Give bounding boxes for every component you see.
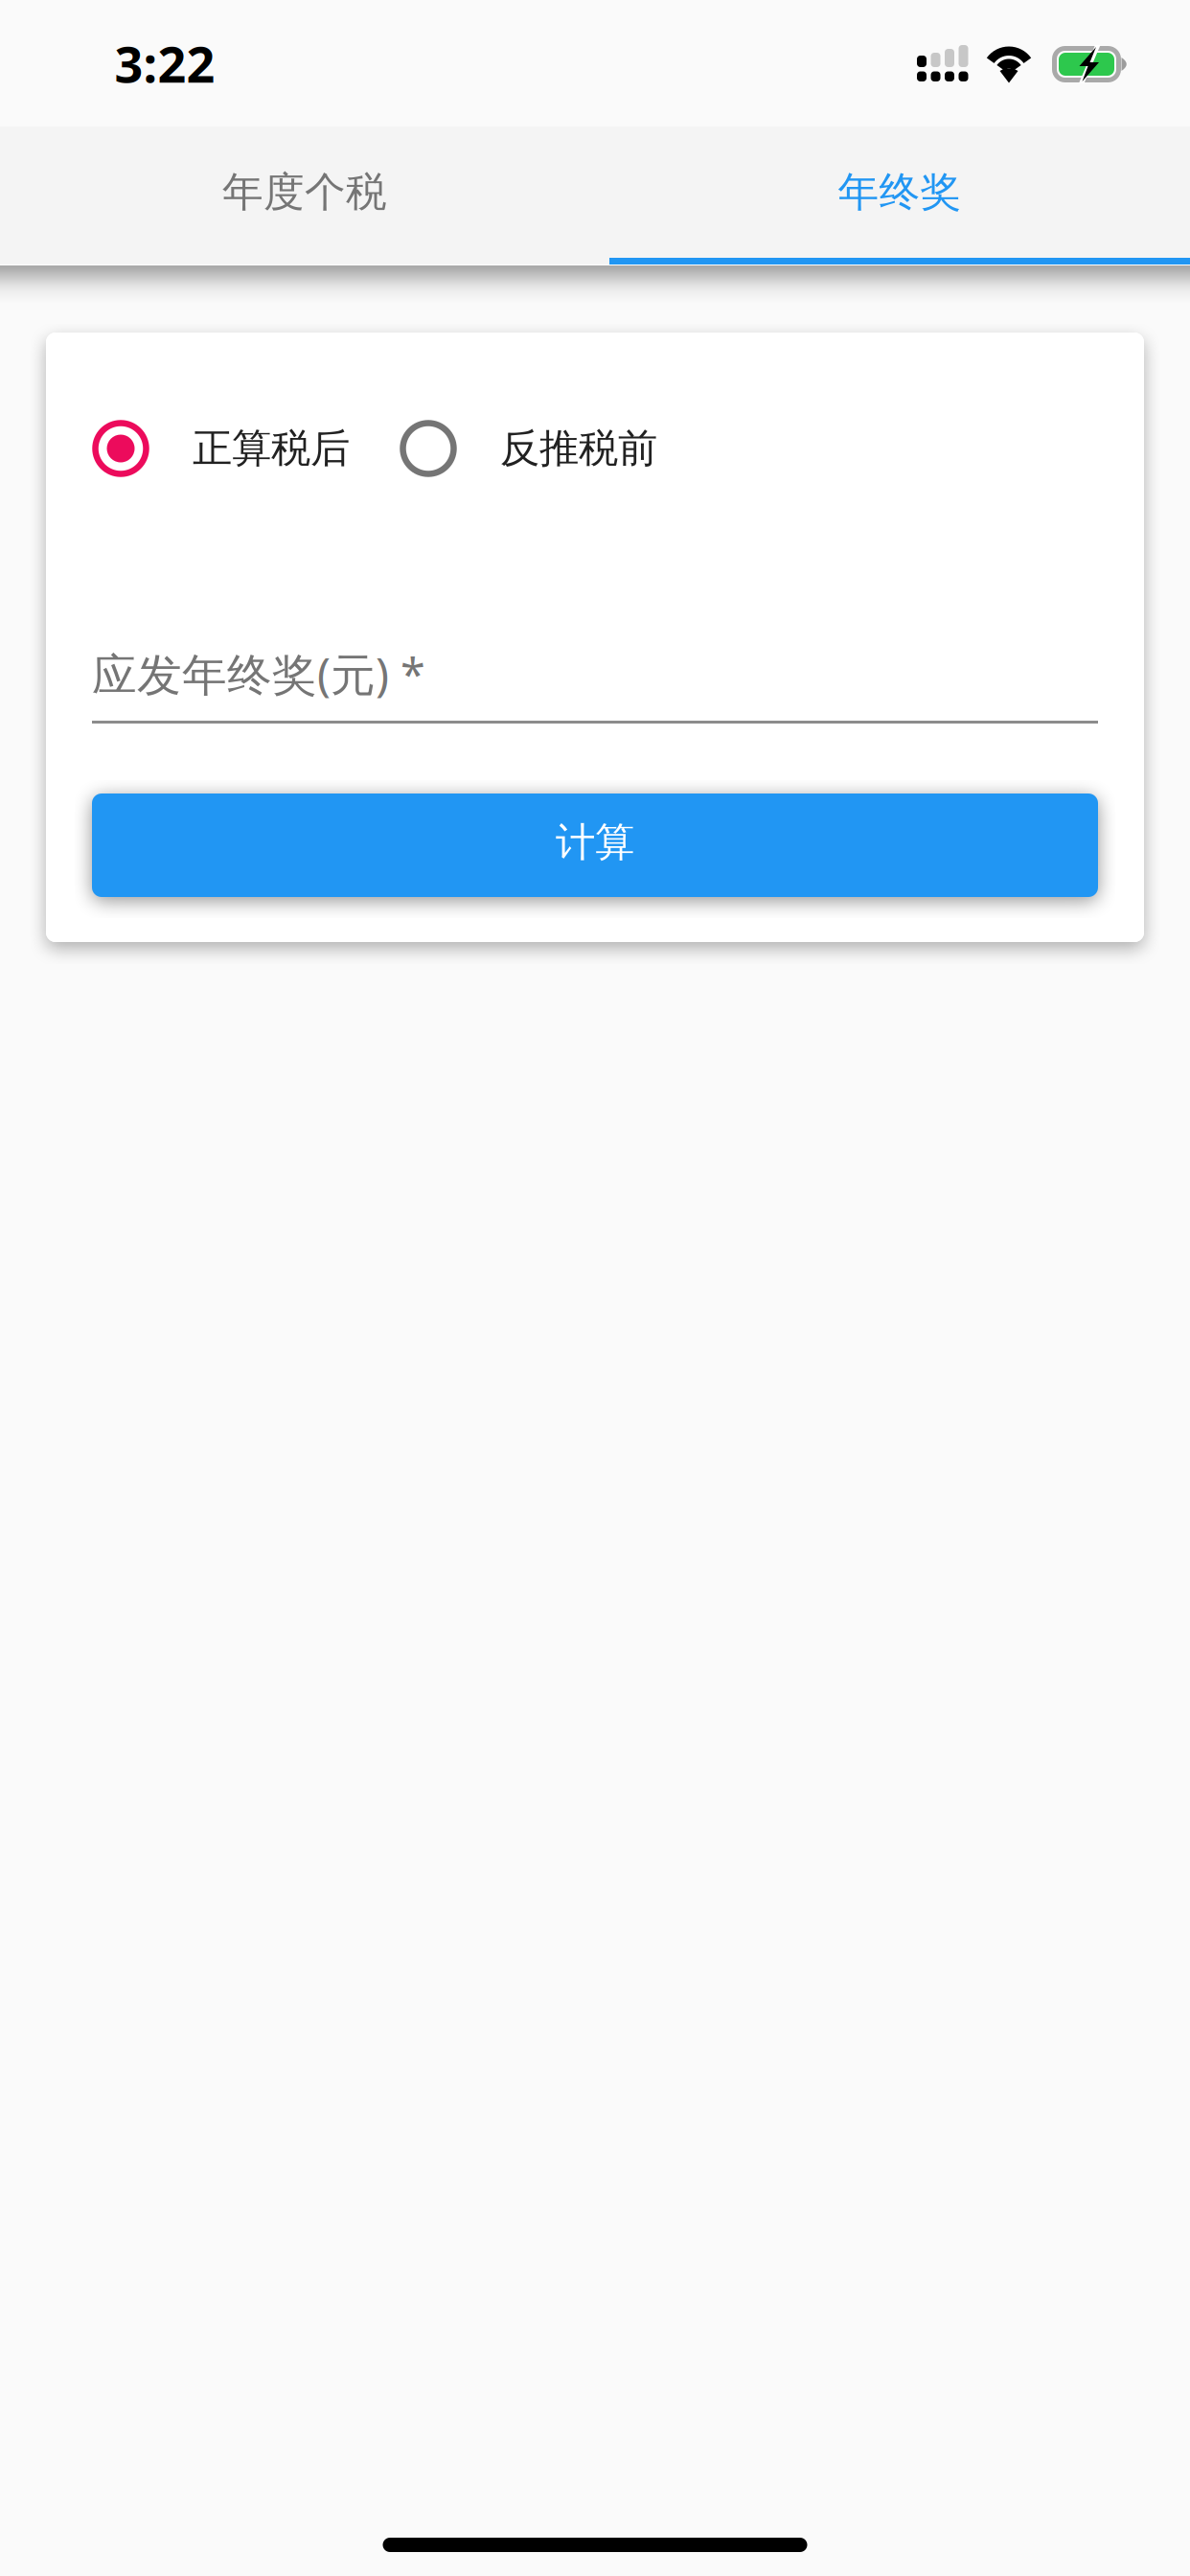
button[interactable]: 年终奖 xyxy=(609,126,1190,264)
staticText: 应发年终奖(元) * xyxy=(92,644,425,703)
button[interactable]: 反推税前 xyxy=(400,420,657,477)
staticText: 年终奖 xyxy=(838,167,961,217)
button[interactable]: 计算 xyxy=(92,793,1098,897)
staticText: 3:22 xyxy=(114,30,215,96)
button[interactable]: 应发年终奖(元) * xyxy=(92,645,1098,765)
button[interactable]: 正算税后 xyxy=(92,420,350,477)
staticText: 年度个税 xyxy=(222,167,387,217)
staticText: 正算税后 xyxy=(193,424,350,473)
staticText: 反推税前 xyxy=(500,424,657,473)
staticText: 计算 xyxy=(556,818,634,867)
button[interactable]: 年度个税 xyxy=(0,126,609,264)
